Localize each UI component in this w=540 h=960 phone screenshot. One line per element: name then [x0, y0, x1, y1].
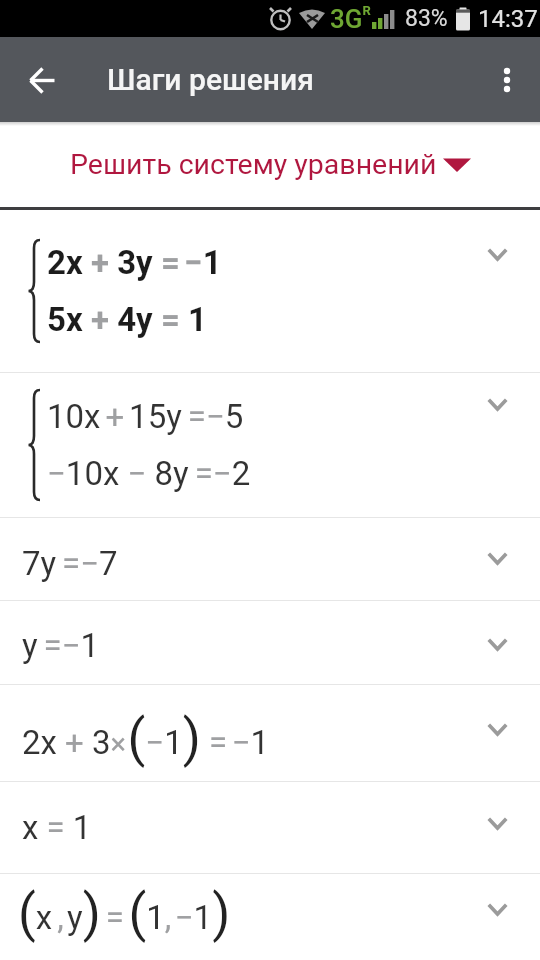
button[interactable]: [18, 56, 66, 104]
button[interactable]: 7y =−7: [0, 518, 540, 600]
staticText: (x ,y) =(1,−1): [18, 883, 231, 944]
staticText: 5x + 4y = 1: [47, 300, 207, 339]
staticText: 2x + 3y =−1: [47, 243, 222, 282]
button[interactable]: (x ,y) =(1,−1): [0, 874, 540, 960]
button[interactable]: [486, 59, 528, 101]
staticText: 7y =−7: [22, 544, 118, 583]
staticText: Шаги решения: [107, 62, 314, 97]
staticText: 10x + 15y =−5: [47, 397, 244, 436]
staticText: 2x + 3×(−1) =−1: [22, 708, 270, 769]
button[interactable]: Решить систему уравнений: [70, 148, 471, 181]
staticText: 83%: [405, 5, 448, 32]
button[interactable]: 2x + 3×(−1) =−1: [0, 685, 540, 781]
button[interactable]: 2x + 3y =−1: [0, 210, 540, 372]
staticText: 14:37: [478, 5, 538, 33]
staticText: 3GR: [330, 3, 371, 34]
staticText: −10x − 8y =−2: [47, 454, 251, 493]
staticText: Решить систему уравнений: [70, 148, 437, 181]
staticText: x = 1: [22, 808, 92, 847]
staticText: y =−1: [22, 626, 100, 665]
button[interactable]: 10x + 15y =−5: [0, 373, 540, 517]
button[interactable]: x = 1: [0, 782, 540, 873]
button[interactable]: y =−1: [0, 601, 540, 684]
